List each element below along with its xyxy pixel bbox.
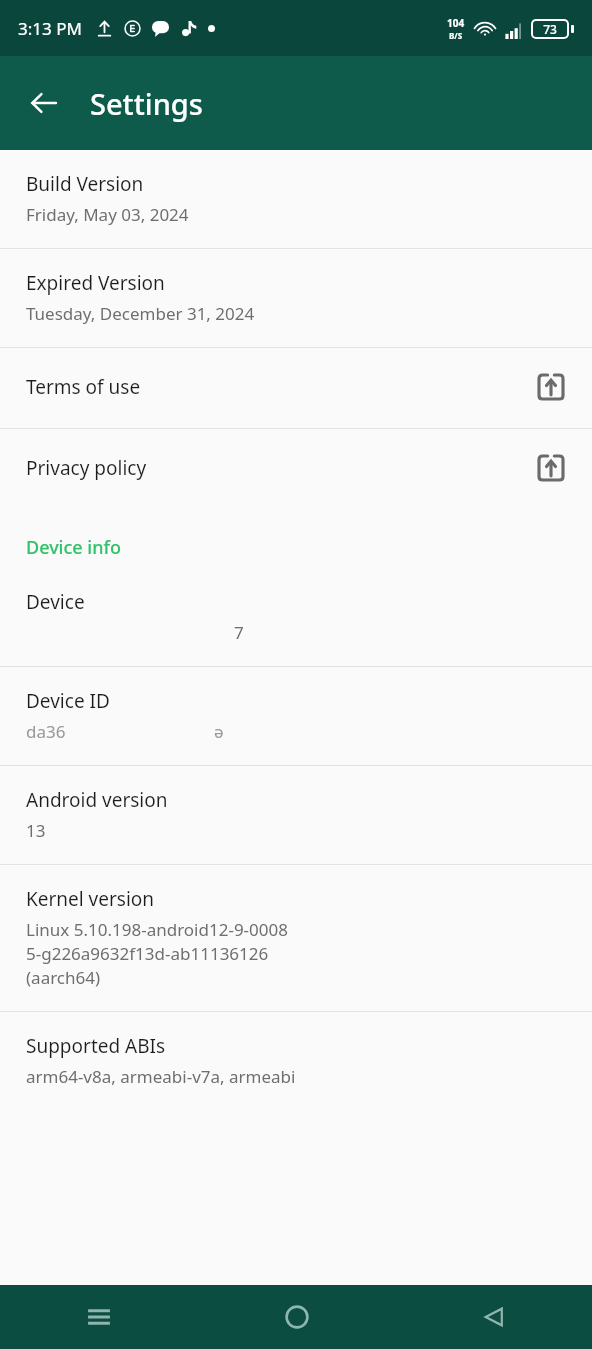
staticText: da36 <box>26 720 66 743</box>
staticText: ə <box>214 720 224 743</box>
staticText: Linux 5.10.198-android12-9-0008 5-g226a9… <box>26 918 288 989</box>
staticText: 73 <box>543 21 557 37</box>
staticText: Kernel version <box>26 886 155 912</box>
staticText: Tuesday, December 31, 2024 <box>26 302 255 325</box>
button[interactable]: Terms of use <box>0 348 592 428</box>
staticText: Device ID <box>26 688 110 714</box>
staticText: Terms of use <box>26 374 536 400</box>
staticText: B/S <box>449 30 463 41</box>
other: Open link <box>536 372 566 402</box>
staticText: Android version <box>26 787 168 813</box>
button[interactable]: Build Version <box>0 150 592 248</box>
staticText: Supported ABIs <box>26 1033 166 1059</box>
staticText: Privacy policy <box>26 455 536 481</box>
staticText: Settings <box>90 84 203 123</box>
staticText: Build Version <box>26 171 144 197</box>
button[interactable]: Expired Version <box>0 249 592 347</box>
staticText: 7 <box>234 621 244 644</box>
button[interactable]: Device <box>0 568 592 666</box>
button[interactable]: Home <box>198 1285 395 1349</box>
button[interactable]: Kernel version <box>0 865 592 1011</box>
staticText: Device <box>26 589 85 615</box>
staticText: Expired Version <box>26 270 165 296</box>
button[interactable]: Back <box>20 79 68 127</box>
staticText: Device info <box>26 535 121 560</box>
staticText: Friday, May 03, 2024 <box>26 203 189 226</box>
staticText: arm64-v8a, armeabi-v7a, armeabi <box>26 1065 296 1088</box>
staticText: 13 <box>26 819 46 842</box>
button[interactable]: Recents <box>0 1285 198 1349</box>
button[interactable]: Device ID <box>0 667 592 765</box>
button[interactable]: Android version <box>0 766 592 864</box>
button[interactable]: Back <box>395 1285 592 1349</box>
button[interactable]: Supported ABIs <box>0 1012 592 1110</box>
staticText: 104 <box>447 16 465 30</box>
other: Open link <box>536 453 566 483</box>
button[interactable]: Privacy policy <box>0 429 592 509</box>
staticText: 3:13 PM <box>18 17 82 40</box>
